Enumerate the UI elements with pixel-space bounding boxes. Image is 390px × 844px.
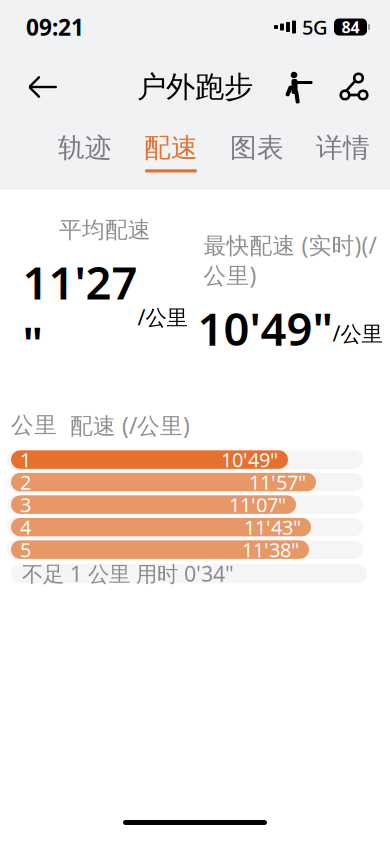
staticText: 配速 (/公里)	[70, 410, 190, 440]
staticText: 配速	[144, 131, 198, 164]
staticText: 3	[20, 491, 31, 518]
staticText: 1	[20, 446, 31, 473]
staticText: 不足 1 公里 用时 0'34"	[22, 559, 234, 588]
button[interactable]: 配速	[140, 125, 202, 172]
staticText: 图表	[230, 131, 284, 164]
staticText: 平均配速	[59, 216, 151, 244]
button[interactable]: 轨迹	[54, 125, 116, 172]
staticText: 11'57"	[249, 469, 306, 495]
staticText: 公里	[11, 411, 57, 439]
staticText: 4	[20, 514, 31, 540]
staticText: 详情	[316, 131, 370, 164]
button[interactable]: 图表	[226, 125, 288, 172]
button[interactable]: 返回	[16, 60, 70, 114]
staticText: 最快配速 (实时)(/公里)	[203, 230, 376, 290]
staticText: /公里	[137, 303, 187, 331]
staticText: 09:21	[26, 12, 84, 42]
staticText: 轨迹	[58, 131, 112, 164]
staticText: 11'27"	[22, 252, 137, 372]
button[interactable]: 详情	[312, 125, 374, 172]
button[interactable]: 运动类型	[272, 60, 320, 114]
staticText: 84	[341, 16, 359, 38]
staticText: 11'38"	[242, 536, 299, 563]
staticText: /公里	[332, 319, 382, 347]
button[interactable]: 分享	[328, 60, 376, 114]
staticText: 户外跑步	[137, 69, 253, 105]
staticText: 2	[20, 469, 31, 495]
staticText: 11'43"	[244, 514, 301, 540]
staticText: 11'07"	[229, 491, 286, 518]
staticText: 5	[20, 536, 31, 563]
staticText: 5G	[302, 14, 328, 40]
staticText: 10'49"	[197, 298, 332, 358]
staticText: 10'49"	[221, 446, 278, 473]
